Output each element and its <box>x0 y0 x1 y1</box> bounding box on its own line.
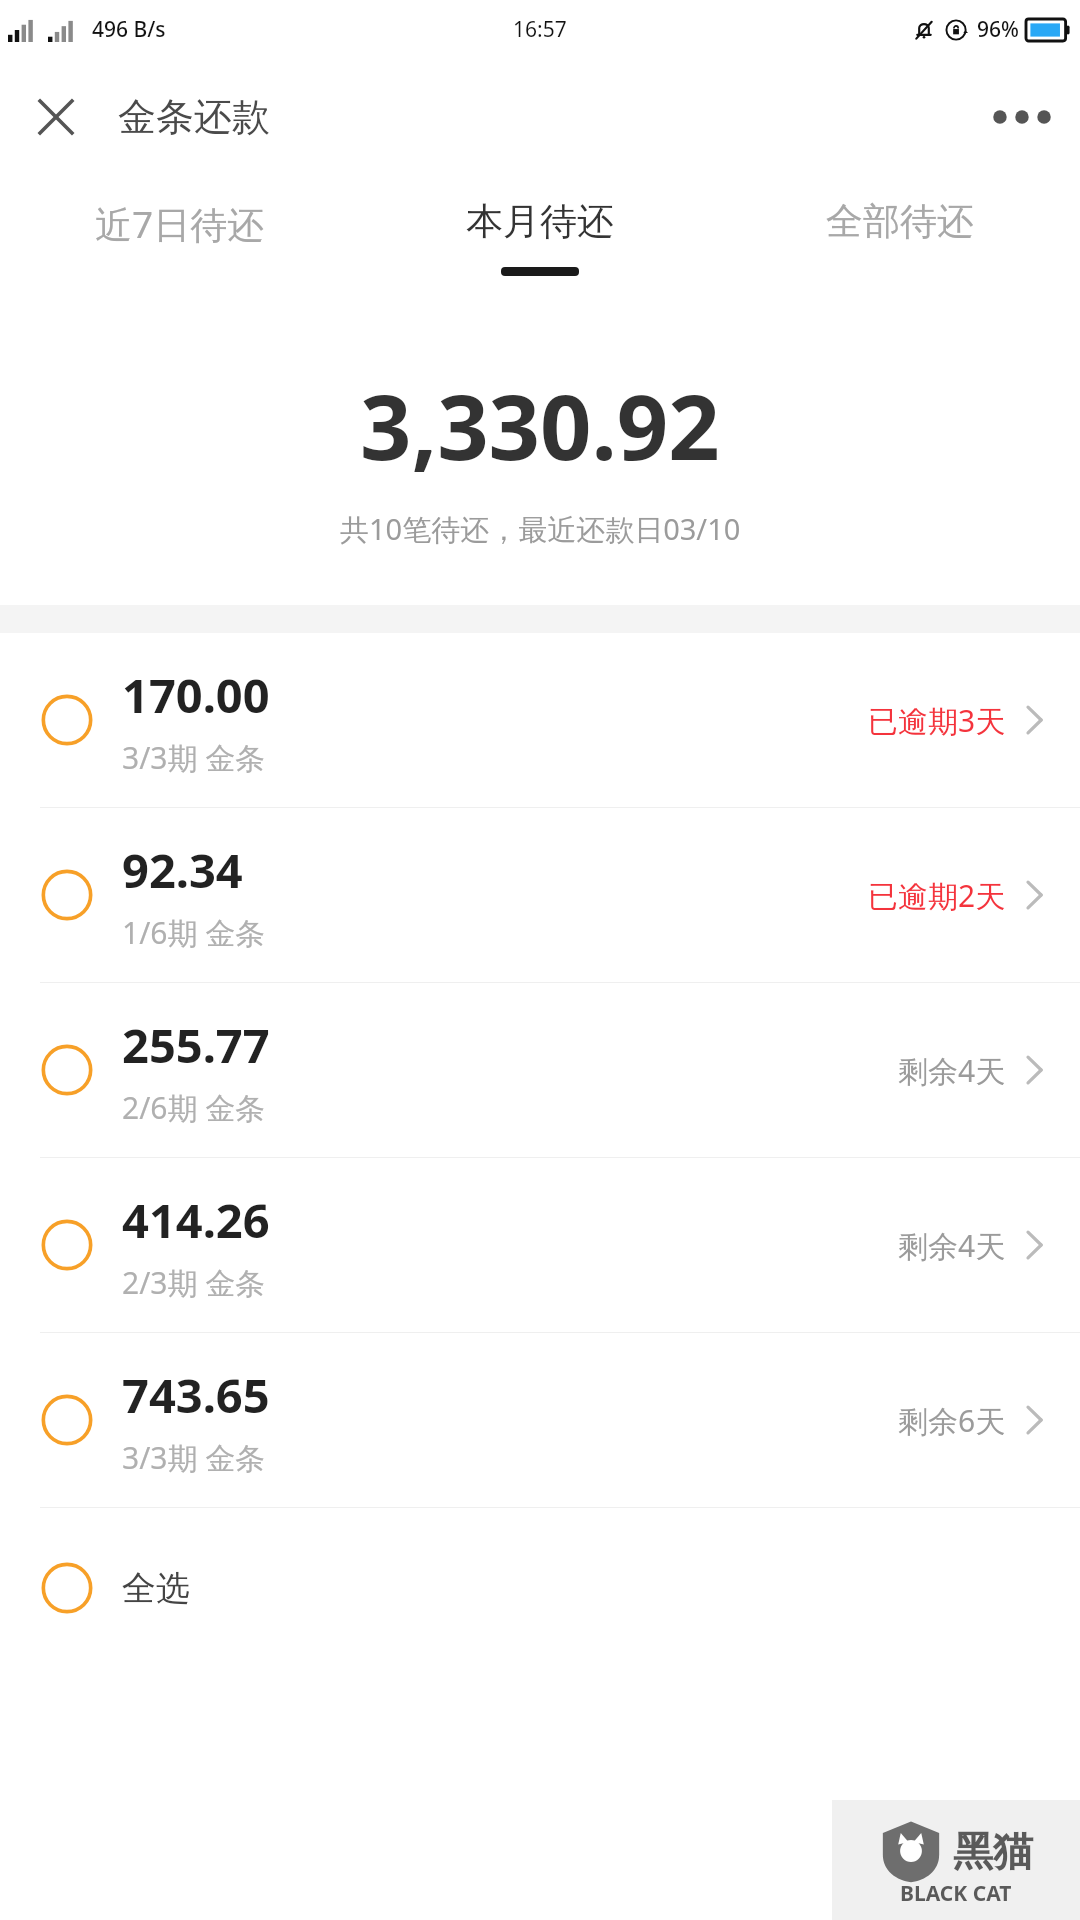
staticText: 剩余4天 <box>898 1050 1006 1091</box>
staticText: BLACK CAT <box>900 1879 1012 1908</box>
button[interactable]: 本月待还 <box>360 176 720 306</box>
staticText: 全部待还 <box>826 198 974 245</box>
button[interactable]: Select <box>0 633 1080 807</box>
button[interactable]: 全部待还 <box>720 176 1080 306</box>
other: Select <box>40 693 94 747</box>
staticText: 496 B/s <box>92 15 166 44</box>
staticText: 3/3期 金条 <box>122 737 266 778</box>
staticText: 92.34 <box>122 838 243 902</box>
staticText: 2/6期 金条 <box>122 1087 266 1128</box>
staticText: 96% <box>977 15 1019 44</box>
staticText: 金条还款 <box>118 93 270 141</box>
staticText: 已逾期3天 <box>868 700 1006 741</box>
button[interactable]: Select <box>0 983 1080 1157</box>
button[interactable]: 近7日待还 <box>0 176 360 306</box>
staticText: 2/3期 金条 <box>122 1262 266 1303</box>
other: Select <box>40 1393 94 1447</box>
staticText: 414.26 <box>122 1188 270 1252</box>
button[interactable]: Select <box>0 1158 1080 1332</box>
staticText: 1/6期 金条 <box>122 912 266 953</box>
other: Select <box>40 868 94 922</box>
staticText: 255.77 <box>122 1013 270 1077</box>
staticText: 3/3期 金条 <box>122 1437 266 1478</box>
button[interactable]: More options <box>982 77 1062 157</box>
staticText: 本月待还 <box>466 198 614 245</box>
staticText: 全选 <box>122 1567 190 1610</box>
staticText: 已逾期2天 <box>868 875 1006 916</box>
button[interactable]: Select <box>0 1333 1080 1507</box>
staticText: 16:57 <box>513 15 567 44</box>
staticText: 近7日待还 <box>95 198 265 249</box>
button[interactable]: Select <box>0 808 1080 982</box>
button[interactable]: 全选 <box>0 1508 1080 1668</box>
staticText: 剩余4天 <box>898 1225 1006 1266</box>
staticText: 170.00 <box>122 663 270 727</box>
staticText: 共10笔待还，最近还款日03/10 <box>340 509 741 549</box>
button[interactable]: Close <box>18 79 94 155</box>
staticText: 剩余6天 <box>898 1400 1006 1441</box>
staticText: 黑猫 <box>953 1826 1033 1876</box>
staticText: 3,330.92 <box>360 364 720 487</box>
other: Select <box>40 1043 94 1097</box>
other: Select <box>40 1218 94 1272</box>
staticText: 743.65 <box>122 1363 270 1427</box>
